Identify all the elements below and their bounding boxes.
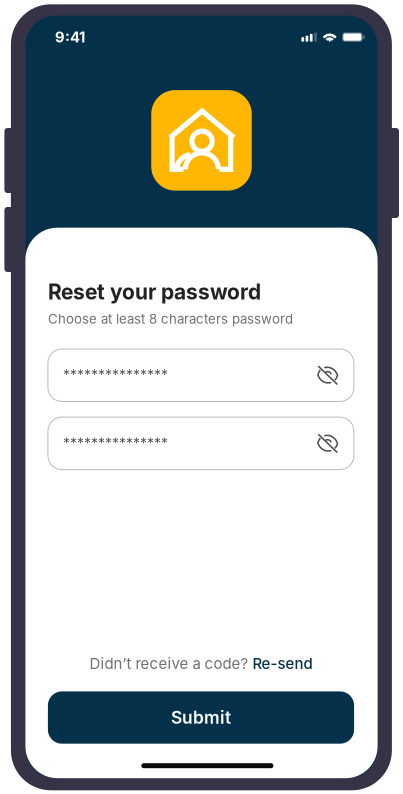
button[interactable]: Show password <box>310 423 346 463</box>
button[interactable]: Show password <box>310 355 346 395</box>
staticText: Reset your password <box>48 279 261 304</box>
staticText: *************** <box>63 367 168 384</box>
button[interactable]: Submit <box>48 691 354 744</box>
staticText: 9:41 <box>55 28 85 46</box>
button[interactable]: Re-send <box>252 654 312 673</box>
staticText: Didn’t receive a code? <box>89 654 252 673</box>
staticText: *************** <box>63 435 168 452</box>
staticText: Choose at least 8 characters password <box>48 311 293 327</box>
staticText: Re-send <box>252 654 312 673</box>
staticText: Submit <box>171 707 231 728</box>
